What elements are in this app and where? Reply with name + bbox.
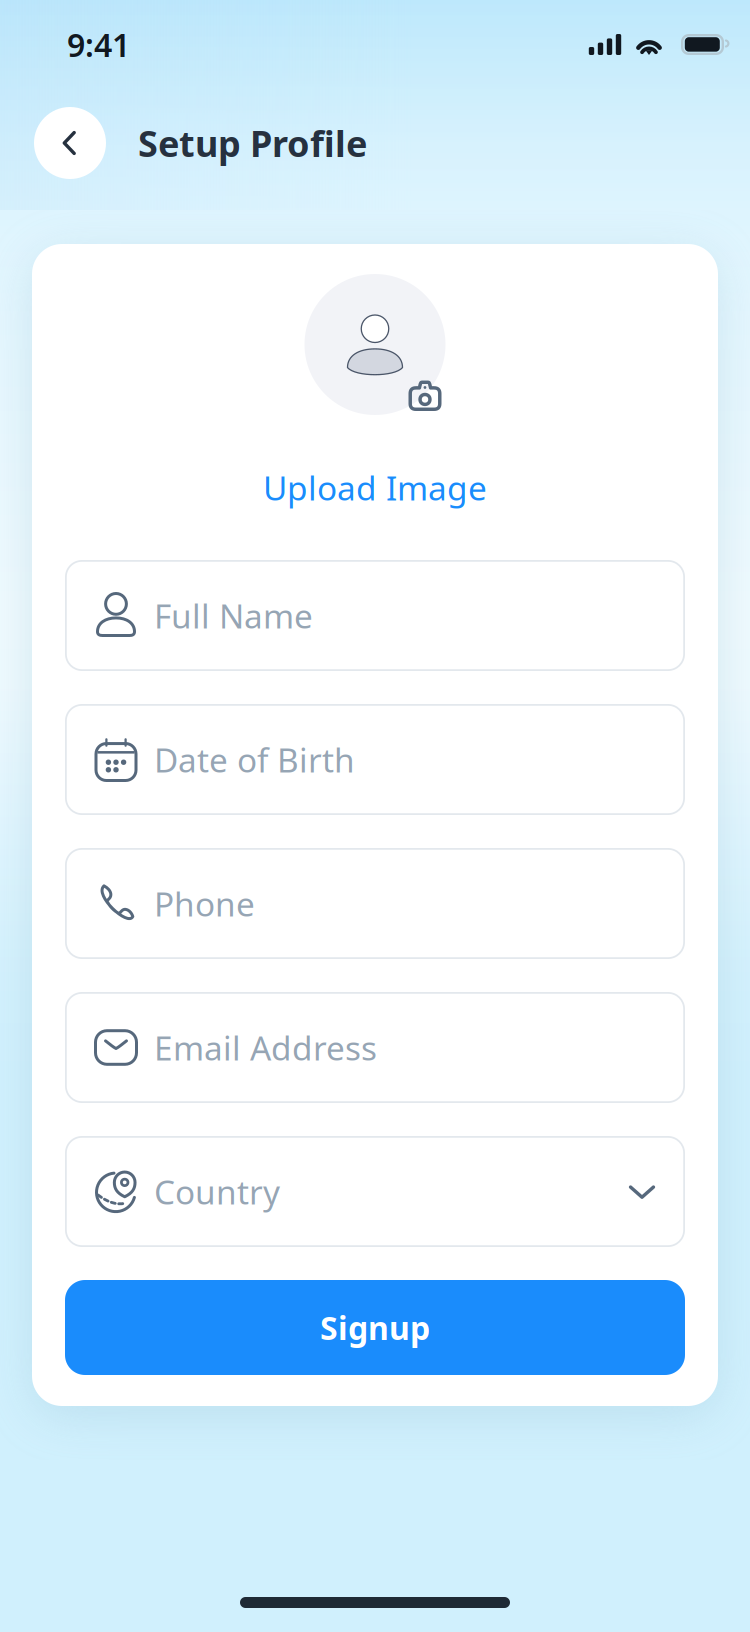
button[interactable]: Country — [65, 1136, 685, 1247]
button[interactable]: Upload Image — [263, 465, 487, 510]
staticText: Signup — [320, 1306, 430, 1349]
button[interactable]: Signup — [65, 1280, 685, 1375]
staticText: Country — [154, 1169, 280, 1214]
button[interactable]: Phone — [65, 848, 685, 959]
button[interactable]: Full Name — [65, 560, 685, 671]
button[interactable]: Email Address — [65, 992, 685, 1103]
staticText: 9:41 — [67, 23, 130, 66]
staticText: Setup Profile — [138, 119, 367, 167]
button[interactable]: Back — [34, 107, 106, 179]
staticText: Full Name — [154, 593, 313, 638]
staticText: Email Address — [154, 1025, 377, 1070]
staticText: Date of Birth — [154, 737, 355, 782]
staticText: Upload Image — [263, 465, 487, 510]
staticText: Phone — [154, 881, 255, 926]
button[interactable]: Date of Birth — [65, 704, 685, 815]
